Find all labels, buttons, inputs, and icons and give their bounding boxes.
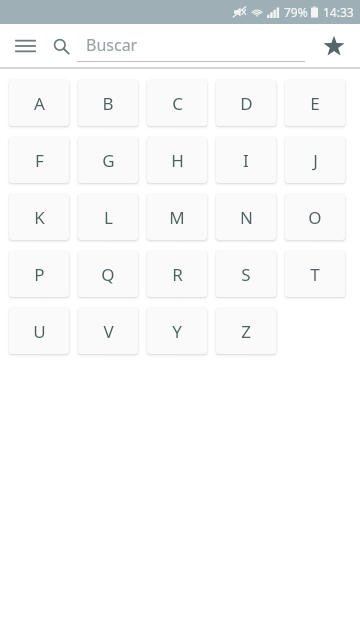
button[interactable]: G [78,137,138,183]
button[interactable]: M [147,194,207,240]
staticText: P [34,263,45,286]
staticText: Q [101,263,115,286]
staticText: I [243,149,249,172]
button[interactable]: L [78,194,138,240]
button[interactable]: Favorites [316,28,352,64]
button[interactable]: Menu [8,29,42,63]
button[interactable]: U [9,308,69,354]
button[interactable]: A [9,80,69,126]
staticText: O [308,206,322,229]
staticText: G [102,149,115,172]
staticText: M [169,206,185,229]
staticText: V [103,320,114,343]
button[interactable]: K [9,194,69,240]
button[interactable]: E [285,80,345,126]
button[interactable]: H [147,137,207,183]
staticText: A [34,92,45,115]
staticText: Y [172,320,182,343]
button[interactable]: B [78,80,138,126]
button[interactable]: R [147,251,207,297]
staticText: L [104,206,113,229]
staticText: T [310,263,320,286]
button[interactable]: C [147,80,207,126]
staticText: E [310,92,320,115]
button[interactable]: I [216,137,276,183]
button[interactable]: Buscar [50,28,305,64]
button[interactable]: T [285,251,345,297]
staticText: Z [241,320,251,343]
staticText: B [102,92,114,115]
button[interactable]: D [216,80,276,126]
button[interactable]: O [285,194,345,240]
button[interactable]: F [9,137,69,183]
button[interactable]: N [216,194,276,240]
button[interactable]: J [285,137,345,183]
staticText: N [240,206,253,229]
staticText: D [240,92,253,115]
button[interactable]: Y [147,308,207,354]
staticText: R [172,263,183,286]
staticText: Buscar [86,34,138,56]
staticText: U [33,320,46,343]
staticText: 14:33 [323,4,354,20]
staticText: F [35,149,44,172]
staticText: 79% [284,4,308,20]
staticText: J [313,149,318,172]
button[interactable]: P [9,251,69,297]
staticText: K [34,206,45,229]
button[interactable]: V [78,308,138,354]
button[interactable]: Q [78,251,138,297]
button[interactable]: Z [216,308,276,354]
staticText: C [172,92,183,115]
button[interactable]: S [216,251,276,297]
staticText: S [241,263,251,286]
staticText: H [171,149,184,172]
